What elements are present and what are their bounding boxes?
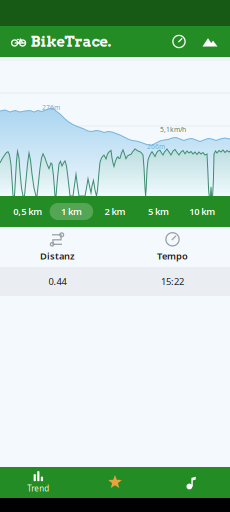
staticText: Distanz (40, 250, 75, 262)
staticText: 5,1km/h (160, 125, 186, 134)
button[interactable]: 5 km (137, 203, 180, 220)
staticText: Trend (27, 483, 49, 494)
button[interactable]: 0,5 km (6, 203, 50, 220)
button[interactable]: Elevation (196, 36, 224, 47)
button[interactable]: Music (153, 466, 230, 498)
staticText: BikeTrace. (30, 33, 111, 50)
staticText: Tempo (157, 250, 188, 262)
button[interactable]: 1 km (50, 203, 93, 220)
button[interactable]: Trend (0, 466, 77, 498)
button[interactable]: Favourites (77, 466, 153, 498)
button[interactable]: Speed (166, 34, 192, 48)
staticText: 10 km (189, 205, 215, 218)
staticText: 2 km (104, 205, 125, 218)
staticText: 5 km (148, 205, 169, 218)
staticText: 1 km (61, 205, 82, 218)
staticText: 0.44 (48, 275, 66, 288)
staticText: 15:22 (161, 275, 184, 288)
button[interactable]: 2 km (93, 203, 137, 220)
staticText: 0,5 km (13, 205, 42, 218)
staticText: 266m (147, 142, 165, 151)
button[interactable]: 10 km (180, 203, 224, 220)
staticText: 276m (42, 103, 60, 112)
